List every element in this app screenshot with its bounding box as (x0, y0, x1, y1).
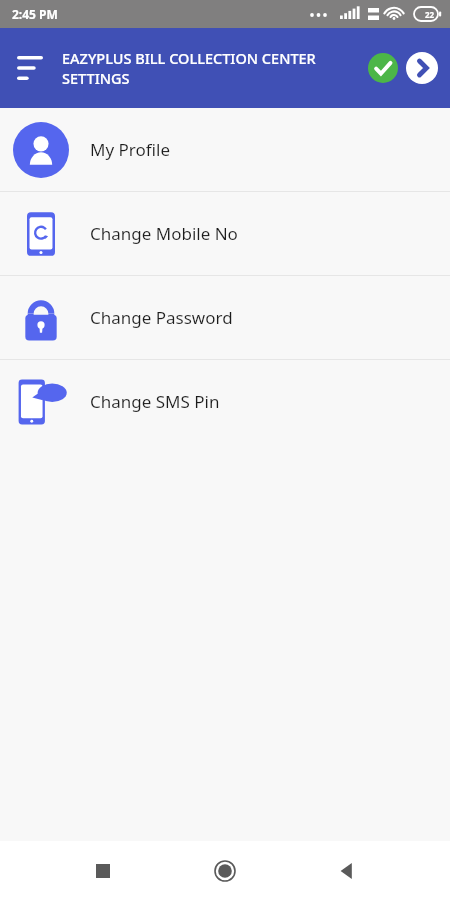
staticText: Change SMS Pin (90, 390, 220, 413)
button[interactable]: Change Password (0, 276, 450, 359)
button[interactable]: Change Mobile No (0, 192, 450, 275)
button[interactable]: Change SMS Pin (0, 360, 450, 443)
staticText: Change Mobile No (90, 222, 238, 245)
button[interactable]: Recent apps (80, 848, 126, 894)
staticText: My Profile (90, 138, 170, 161)
button[interactable]: Back (324, 848, 370, 894)
staticText: 22 (425, 9, 435, 20)
button[interactable]: My Profile (0, 108, 450, 191)
staticText: Change Password (90, 306, 233, 329)
staticText: EAZYPLUS BILL COLLECTION CENTER SETTINGS (62, 48, 358, 89)
staticText: 2:45 PM (12, 6, 58, 22)
button[interactable]: Confirm (366, 51, 400, 85)
button[interactable]: Home (202, 848, 248, 894)
button[interactable]: Next (404, 50, 440, 86)
button[interactable]: Menu (10, 48, 50, 88)
